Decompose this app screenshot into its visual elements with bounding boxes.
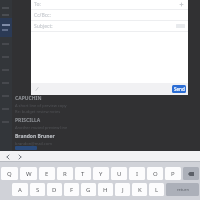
button[interactable]: T [75,167,91,180]
button[interactable]: Subject: [31,21,188,31]
button[interactable]: O [147,167,163,180]
button[interactable]: G [81,183,96,196]
button[interactable]: Previous field [4,153,11,160]
button[interactable] [0,50,12,63]
staticText: H [103,186,108,194]
staticText: T [81,170,85,178]
staticText: F [70,186,74,194]
staticText: Subject: [34,23,53,30]
staticText: R [63,170,67,178]
staticText: To: [34,1,41,8]
button[interactable] [0,4,12,11]
button[interactable] [0,63,12,76]
button[interactable]: F [64,183,79,196]
button[interactable]: D [47,183,62,196]
staticText: Re: budget review notes [15,109,61,114]
button[interactable] [0,11,12,18]
button[interactable]: Cc/Bcc: [31,10,188,20]
button[interactable]: Send [172,85,186,93]
staticText: Y [99,170,103,178]
button[interactable] [0,76,12,89]
button[interactable]: PRISCILLA [12,114,200,130]
staticText: PRISCILLA [15,117,41,124]
button[interactable]: Add recipient [178,1,185,8]
button[interactable] [0,89,12,102]
button[interactable]: W [20,167,37,180]
button[interactable]: J [115,183,130,196]
staticText: D [52,186,57,194]
staticText: A [18,186,22,194]
staticText: J [122,186,124,194]
button[interactable]: To: [31,0,188,9]
staticText: K [138,186,142,194]
button[interactable]: L [149,183,164,196]
staticText: E [45,170,49,178]
button[interactable]: K [132,183,147,196]
staticText: U [117,170,122,178]
button[interactable]: Q [1,167,18,180]
staticText: P [171,170,175,178]
button[interactable]: return [166,183,199,196]
button[interactable]: E [39,167,55,180]
button[interactable]: CAPUCHIN [12,92,200,114]
staticText: Send [174,86,185,92]
staticText: A short line of preview copy [15,103,67,108]
staticText: I [136,170,139,178]
staticText: Cc/Bcc: [34,12,51,19]
button[interactable]: H [98,183,113,196]
staticText: W [26,170,32,178]
button[interactable]: I [129,167,145,180]
button[interactable]: P [165,167,181,180]
button[interactable]: A [12,183,28,196]
button[interactable]: Backspace [183,167,199,180]
button[interactable] [0,37,12,50]
staticText: Q [7,170,12,178]
button[interactable]: Y [93,167,109,180]
staticText: Another muted preview line [15,125,68,130]
staticText: O [153,170,158,178]
staticText: return [177,187,189,192]
button[interactable]: Next field [16,153,23,160]
button[interactable]: R [57,167,73,180]
staticText: L [155,186,159,194]
staticText: S [36,186,40,194]
button[interactable] [0,18,12,37]
button[interactable]: S [30,183,45,196]
button[interactable]: U [111,167,127,180]
staticText: CAPUCHIN [15,95,42,102]
button[interactable] [0,102,12,115]
staticText: G [86,186,91,194]
staticText: Brandon Bruner [15,133,55,140]
button[interactable] [0,115,12,128]
staticText: brandon@mail.com [15,141,52,146]
button[interactable]: Attach file [34,86,40,92]
